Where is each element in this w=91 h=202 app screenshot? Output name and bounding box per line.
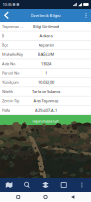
staticText: 10.032,00 <box>38 79 54 85</box>
staticText: Zemin Tip <box>2 98 19 103</box>
staticText: 1 <box>45 70 47 75</box>
staticText: Ana Taşınmaz <box>33 98 58 103</box>
staticText: Taşınmaz Kimlik <box>2 24 24 29</box>
button[interactable]: Recent apps <box>9 192 27 202</box>
staticText: Keçiören <box>38 42 53 48</box>
staticText: Özetlenik Bilgisi <box>30 13 60 18</box>
staticText: Nitelik <box>2 89 13 94</box>
button[interactable]: Back <box>64 192 82 202</box>
button[interactable]: Home <box>36 192 54 202</box>
button[interactable]: Tools <box>55 178 73 192</box>
staticText: İl <box>2 33 4 38</box>
staticText: Ada No <box>2 61 15 66</box>
staticText: Tarla ve Sulama <box>32 89 60 94</box>
button[interactable]: Map <box>0 178 18 192</box>
staticText: Pafta <box>2 107 10 113</box>
button[interactable]: Taşınmaza Git <box>0 115 91 127</box>
staticText: Ankara <box>39 33 52 38</box>
button[interactable]: More <box>73 178 91 192</box>
staticText: 13024 <box>41 61 51 66</box>
staticText: Taşınmaza Git <box>32 118 59 124</box>
staticText: BAĞLUM <box>37 52 54 57</box>
staticText: 10:36 <box>2 2 11 7</box>
button[interactable]: Back <box>0 9 13 22</box>
staticText: Parsel No <box>2 70 19 75</box>
button[interactable]: Layers <box>36 178 55 192</box>
staticText: Bilgi Girilmedi <box>33 24 59 29</box>
staticText: Yüzölçüm <box>2 79 19 85</box>
staticText: İlçe <box>2 42 8 48</box>
staticText: Mahalle/Köy <box>2 52 23 57</box>
staticText: A29-d-07-A-1 <box>35 107 57 113</box>
button[interactable]: Search <box>18 178 36 192</box>
button[interactable]: More options <box>81 9 91 22</box>
